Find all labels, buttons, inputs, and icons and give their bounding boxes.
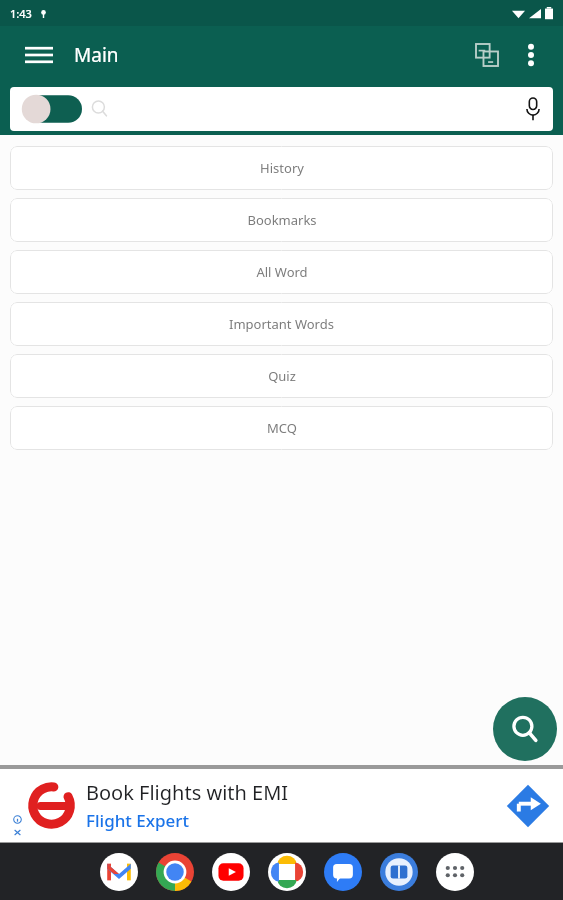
staticText: 1:43	[10, 6, 32, 21]
staticText: All Word	[256, 263, 308, 281]
button[interactable]: History	[10, 146, 553, 190]
staticText: Quiz	[268, 367, 296, 385]
button[interactable]: Apps	[427, 847, 483, 897]
staticText: Important Words	[229, 315, 334, 333]
button[interactable]: Open ad	[499, 777, 557, 835]
button[interactable]: YouTube	[203, 847, 259, 897]
button[interactable]: App	[371, 847, 427, 897]
button[interactable]: Open navigation drawer	[20, 36, 58, 74]
button[interactable]: More options	[509, 33, 553, 77]
button[interactable]: Chrome	[147, 847, 203, 897]
button[interactable]: MCQ	[10, 406, 553, 450]
button[interactable]: Gmail	[91, 847, 147, 897]
button[interactable]: Toggle	[10, 87, 553, 131]
staticText: MCQ	[267, 419, 297, 437]
button[interactable]: Bookmarks	[10, 198, 553, 242]
button[interactable]: Toggle	[20, 94, 82, 124]
button[interactable]: Translate	[465, 33, 509, 77]
button[interactable]: Messages	[315, 847, 371, 897]
staticText: Main	[74, 42, 119, 68]
button[interactable]: All Word	[10, 250, 553, 294]
button[interactable]: Book Flights with EMI	[0, 769, 563, 842]
button[interactable]: Quiz	[10, 354, 553, 398]
button[interactable]: Important Words	[10, 302, 553, 346]
staticText: Flight Expert	[86, 809, 189, 832]
staticText: Book Flights with EMI	[86, 779, 289, 806]
staticText: Bookmarks	[247, 211, 317, 229]
button[interactable]: Photos	[259, 847, 315, 897]
staticText: History	[260, 159, 304, 177]
button[interactable]: Search	[493, 697, 557, 761]
button[interactable]: Voice search	[513, 89, 553, 129]
